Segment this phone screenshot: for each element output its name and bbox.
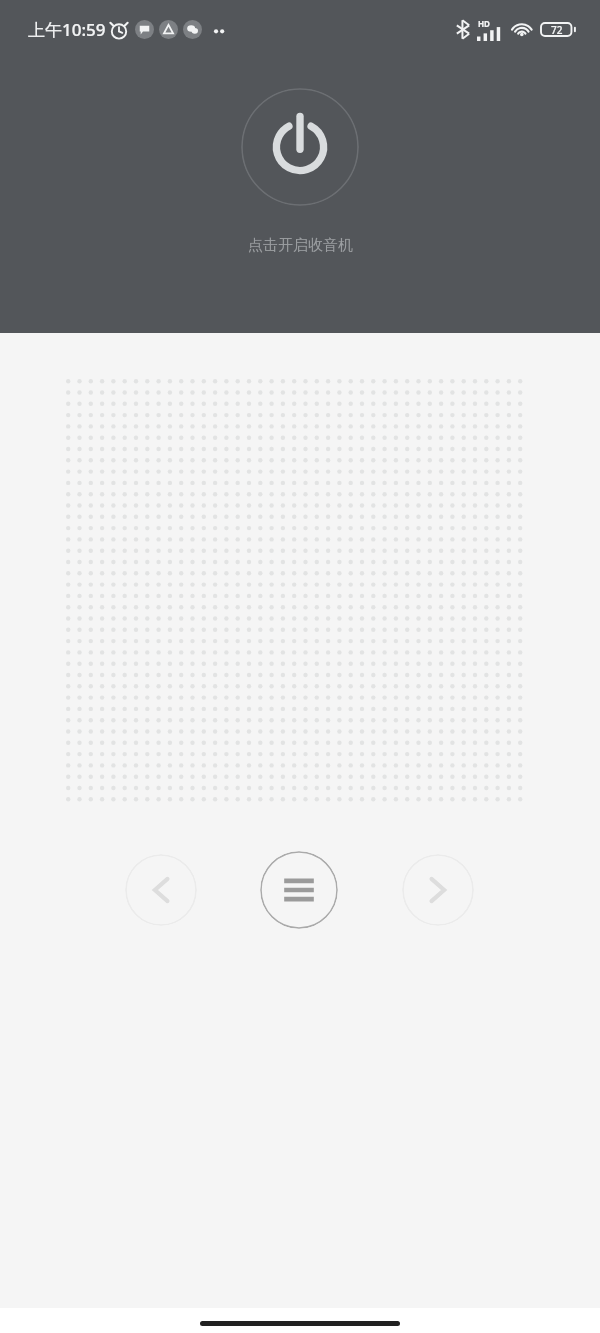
button[interactable]: 下一个电台 bbox=[402, 854, 474, 926]
button[interactable]: 上一个电台 bbox=[125, 854, 197, 926]
staticText: 点击开启收音机 bbox=[248, 236, 353, 255]
staticText: HD bbox=[478, 18, 490, 29]
staticText: 上午10:59 bbox=[28, 18, 106, 41]
staticText: 72 bbox=[551, 23, 563, 37]
button[interactable]: 点击开启收音机 bbox=[241, 88, 359, 206]
button[interactable]: 电台列表菜单 bbox=[260, 851, 338, 929]
